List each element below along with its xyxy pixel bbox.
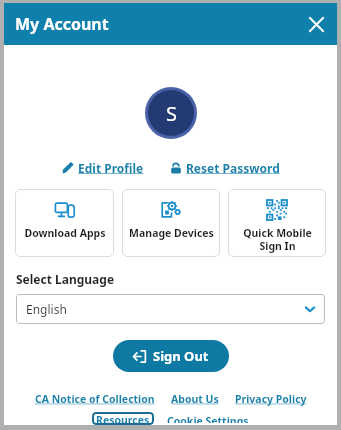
button[interactable]: CA Notice of Collection	[34, 390, 156, 408]
staticText: My Account	[15, 13, 109, 35]
staticText: Manage Devices	[129, 226, 214, 240]
button[interactable]: Privacy Policy	[234, 390, 308, 408]
staticText: Select Language	[16, 271, 115, 287]
button[interactable]: Reset Password	[168, 158, 282, 178]
button[interactable]: Edit Profile	[60, 158, 146, 178]
button[interactable]: Cookie Settings	[166, 412, 250, 425]
staticText: CA Notice of Collection	[35, 392, 155, 406]
button[interactable]: Close	[301, 9, 331, 39]
staticText: S	[166, 100, 177, 127]
staticText: Resources	[96, 413, 150, 424]
staticText: Cookie Settings	[167, 414, 249, 423]
button[interactable]: Manage Devices	[122, 189, 220, 257]
staticText: Privacy Policy	[235, 392, 307, 406]
staticText: About Us	[171, 392, 219, 406]
button[interactable]: About Us	[170, 390, 220, 408]
button[interactable]: Sign Out	[113, 340, 229, 372]
staticText: Quick Mobile Sign In	[243, 226, 312, 253]
button[interactable]: English	[16, 294, 325, 324]
button[interactable]: Download Apps	[15, 189, 114, 257]
staticText: Reset Password	[186, 160, 280, 176]
staticText: Download Apps	[24, 226, 106, 240]
button[interactable]: Resources	[92, 412, 154, 425]
staticText: Sign Out	[153, 347, 209, 365]
button[interactable]: Quick Mobile Sign In	[228, 189, 326, 257]
staticText: English	[26, 301, 67, 317]
staticText: Edit Profile	[78, 160, 144, 176]
